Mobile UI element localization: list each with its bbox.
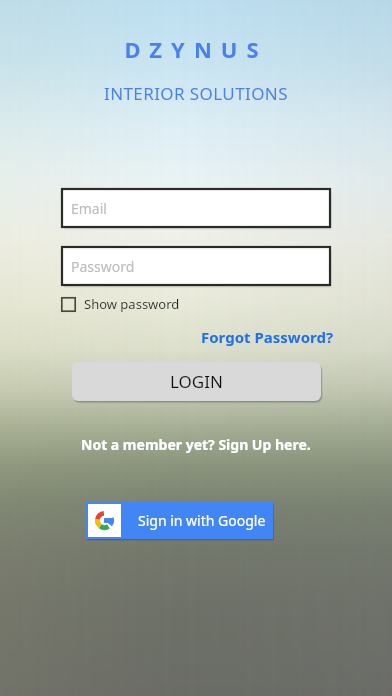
staticText: Email <box>71 199 107 218</box>
staticText: LOGIN <box>170 370 223 393</box>
staticText: Show password <box>84 295 180 313</box>
button[interactable]: Email <box>62 189 330 227</box>
button[interactable]: Show password <box>59 293 182 315</box>
button[interactable]: Not a member yet? Sign Up here. <box>77 431 315 458</box>
staticText: DZYNUS <box>124 34 268 64</box>
staticText: INTERIOR SOLUTIONS <box>104 82 288 105</box>
button[interactable]: Password <box>62 247 330 285</box>
button[interactable]: LOGIN <box>72 362 321 401</box>
staticText: Not a member yet? Sign Up here. <box>81 435 311 454</box>
staticText: Forgot Password? <box>201 327 334 347</box>
staticText: Password <box>71 257 135 276</box>
staticText: Sign in with Google <box>138 511 266 530</box>
button[interactable]: Sign in with Google <box>86 502 273 539</box>
button[interactable]: Forgot Password? <box>197 323 338 351</box>
